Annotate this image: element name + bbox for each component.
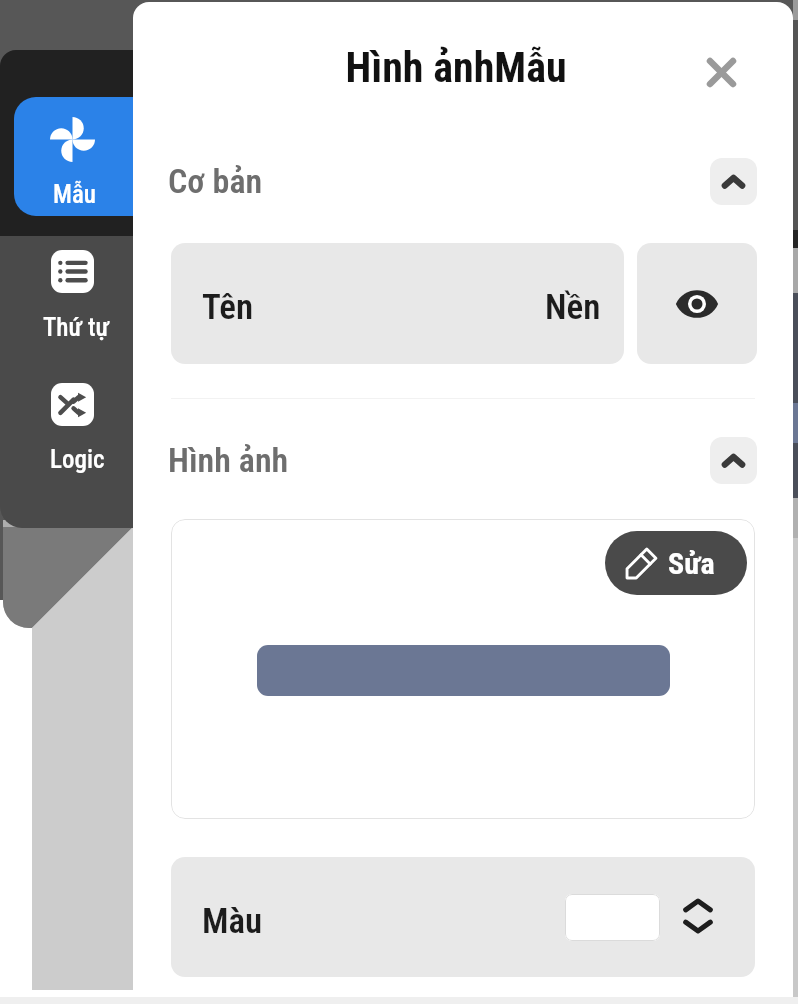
staticText: Sửa — [668, 546, 715, 581]
button[interactable]: Toggle visibility — [637, 243, 757, 364]
button[interactable]: Change colour — [684, 899, 712, 933]
staticText: Tên — [202, 287, 254, 328]
staticText: Thứ tự — [43, 313, 110, 342]
button[interactable]: Thứ tự — [14, 236, 133, 356]
staticText: Màu — [202, 901, 263, 942]
staticText: Hình ảnh — [168, 440, 289, 480]
button[interactable]: Màu — [171, 857, 755, 977]
button[interactable]: Pick colour — [565, 894, 660, 941]
button[interactable]: Mẫu — [14, 97, 147, 216]
button[interactable]: Collapse section — [710, 158, 757, 205]
staticText: Hình ảnhMẫu — [345, 43, 567, 92]
button[interactable]: Sửa — [605, 531, 747, 595]
staticText: Logic — [50, 445, 105, 474]
staticText: Nền — [545, 287, 601, 328]
button[interactable]: Logic — [14, 369, 133, 489]
staticText: Cơ bản — [168, 161, 263, 201]
staticText: Mẫu — [53, 180, 96, 209]
button[interactable]: Close — [695, 46, 747, 98]
button[interactable]: Tên — [171, 243, 624, 364]
button[interactable]: Collapse section — [710, 437, 757, 484]
